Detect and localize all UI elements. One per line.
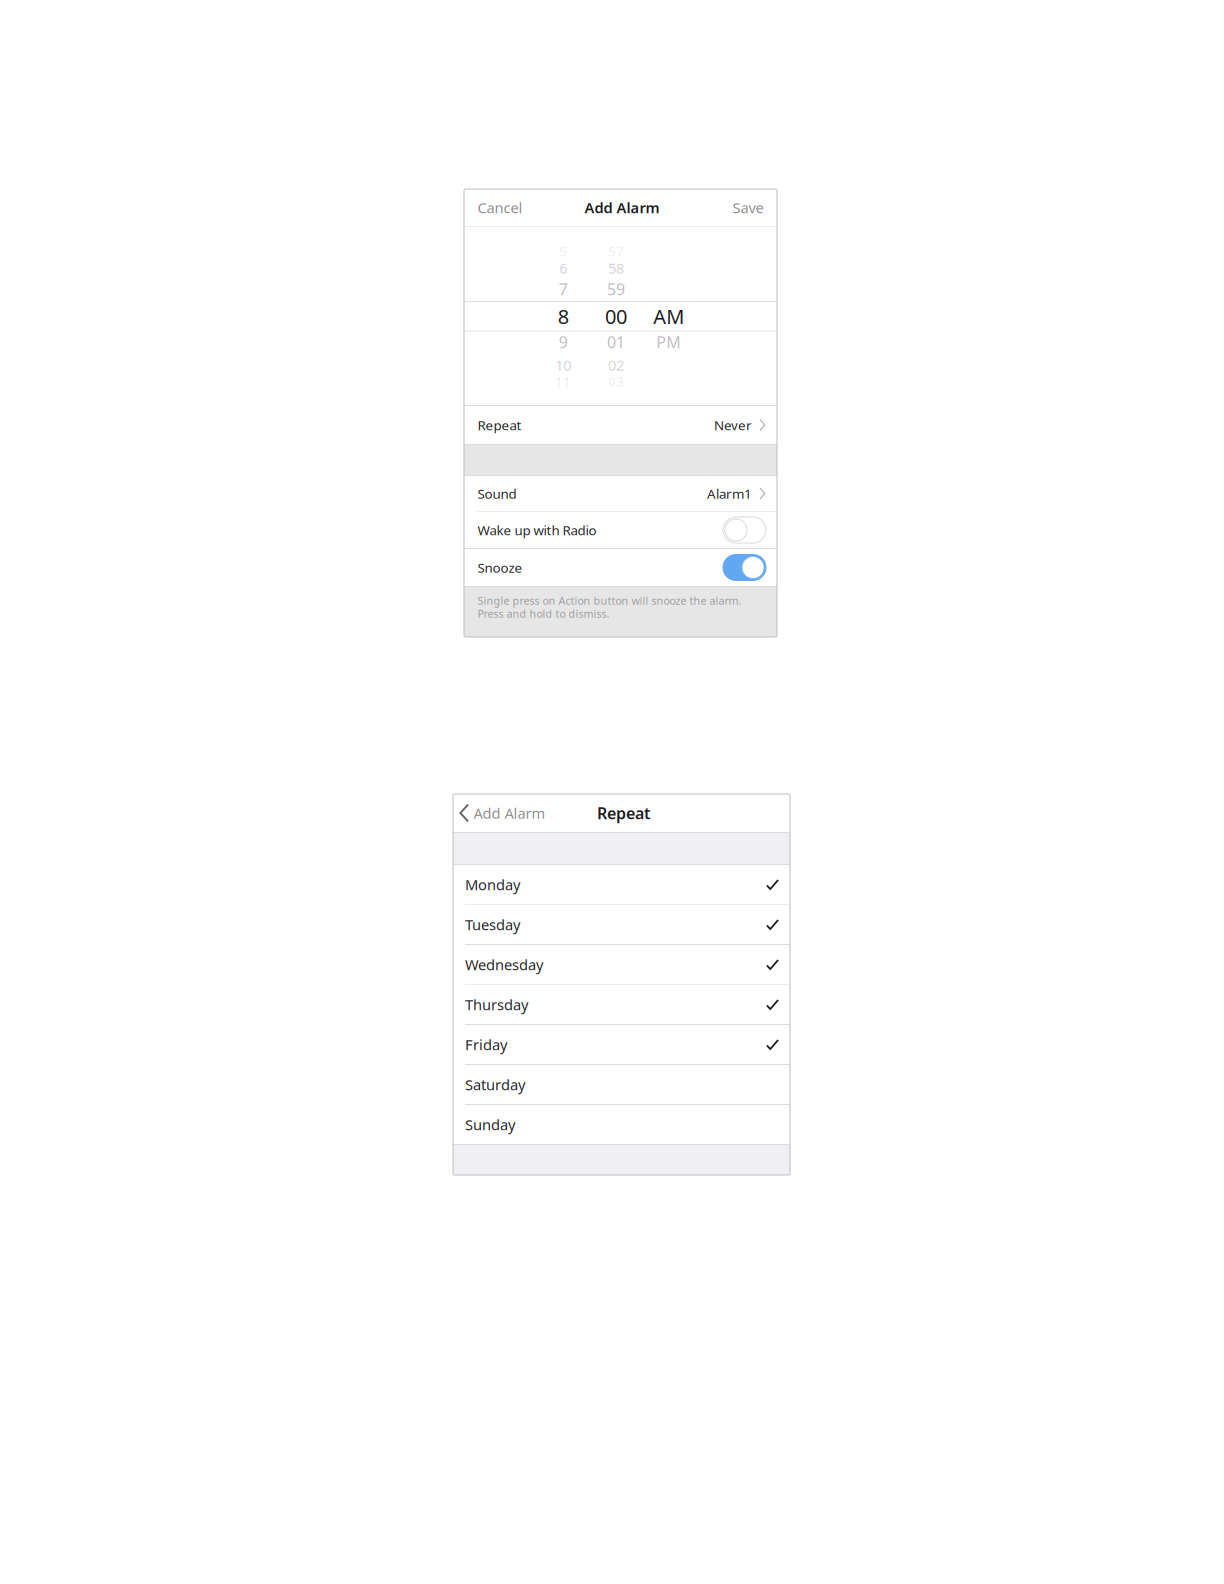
staticText: 9 xyxy=(559,331,568,353)
staticText: Thursday xyxy=(465,995,528,1014)
button[interactable]: Back to Add Alarm xyxy=(459,794,551,832)
staticText: Sunday xyxy=(465,1115,515,1134)
staticText: PM xyxy=(656,331,681,353)
staticText: Friday xyxy=(465,1035,507,1054)
staticText: 57 xyxy=(608,242,624,260)
staticText: Repeat xyxy=(597,802,650,824)
staticText: Snooze xyxy=(477,559,522,576)
staticText: AM xyxy=(653,303,684,330)
staticText: 11 xyxy=(555,372,571,390)
button[interactable]: Save xyxy=(728,189,767,226)
button[interactable]: Thursday xyxy=(453,985,790,1024)
staticText: Add Alarm xyxy=(473,803,545,823)
staticText: 6 xyxy=(559,258,567,278)
button[interactable]: Cancel xyxy=(473,189,526,226)
staticText: Never xyxy=(714,416,752,434)
staticText: Saturday xyxy=(465,1075,525,1094)
staticText: Save xyxy=(732,198,763,217)
staticText: Monday xyxy=(465,875,520,894)
button[interactable]: Snooze xyxy=(464,549,777,586)
staticText: 8 xyxy=(558,303,569,330)
staticText: Sound xyxy=(477,485,516,502)
button[interactable]: Saturday xyxy=(453,1065,790,1104)
staticText: Alarm1 xyxy=(707,485,752,502)
staticText: Cancel xyxy=(477,198,522,217)
button[interactable]: Wake up with Radio xyxy=(464,512,777,548)
button[interactable]: Monday xyxy=(453,865,790,904)
staticText: Single press on Action button will snooz… xyxy=(477,593,741,608)
staticText: Press and hold to dismiss. xyxy=(477,607,609,621)
button[interactable]: Wednesday xyxy=(453,945,790,984)
staticText: 10 xyxy=(555,355,571,375)
staticText: Wake up with Radio xyxy=(477,521,596,539)
staticText: 03 xyxy=(608,372,624,390)
staticText: Add Alarm xyxy=(584,198,659,217)
button[interactable]: Friday xyxy=(453,1025,790,1064)
staticText: 58 xyxy=(608,258,624,278)
staticText: Wednesday xyxy=(465,955,543,974)
staticText: 01 xyxy=(607,331,625,353)
button[interactable]: Sound xyxy=(464,476,777,511)
staticText: 00 xyxy=(605,303,627,330)
staticText: 59 xyxy=(607,278,625,300)
staticText: 02 xyxy=(608,355,624,375)
button[interactable]: Repeat xyxy=(464,406,777,444)
staticText: 7 xyxy=(559,278,568,300)
staticText: 5 xyxy=(559,242,567,260)
button[interactable]: Sunday xyxy=(453,1105,790,1144)
staticText: Tuesday xyxy=(465,915,520,934)
button[interactable]: Tuesday xyxy=(453,905,790,944)
staticText: Repeat xyxy=(477,416,521,434)
